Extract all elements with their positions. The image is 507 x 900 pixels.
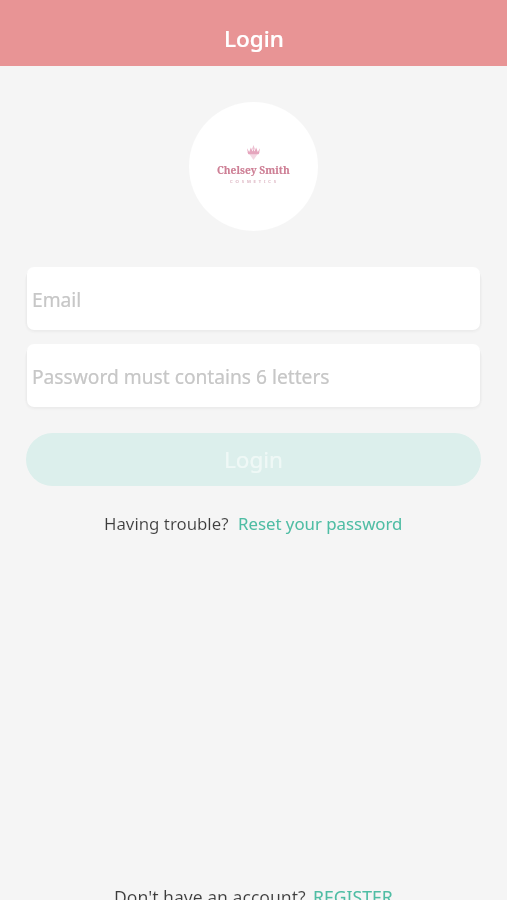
staticText: Login bbox=[224, 23, 284, 54]
staticText: Chelsey Smith bbox=[217, 163, 290, 177]
button[interactable]: Login bbox=[26, 433, 481, 486]
staticText: Don't have an account? bbox=[114, 885, 306, 900]
staticText: Reset your password bbox=[238, 512, 403, 535]
button[interactable]: Email bbox=[27, 267, 480, 330]
staticText: REGISTER bbox=[313, 885, 393, 900]
staticText: Having trouble? bbox=[104, 512, 229, 535]
staticText: Password must contains 6 letters bbox=[32, 363, 330, 389]
button[interactable]: Reset your password bbox=[238, 512, 403, 535]
button[interactable]: REGISTER bbox=[313, 885, 393, 900]
staticText: Login bbox=[224, 444, 283, 475]
button[interactable]: Password must contains 6 letters bbox=[27, 344, 480, 407]
staticText: Email bbox=[32, 286, 82, 312]
other: Chelsey Smith Cosmetics crown logo bbox=[247, 145, 260, 160]
staticText: C O S M E T I C S bbox=[230, 179, 278, 185]
